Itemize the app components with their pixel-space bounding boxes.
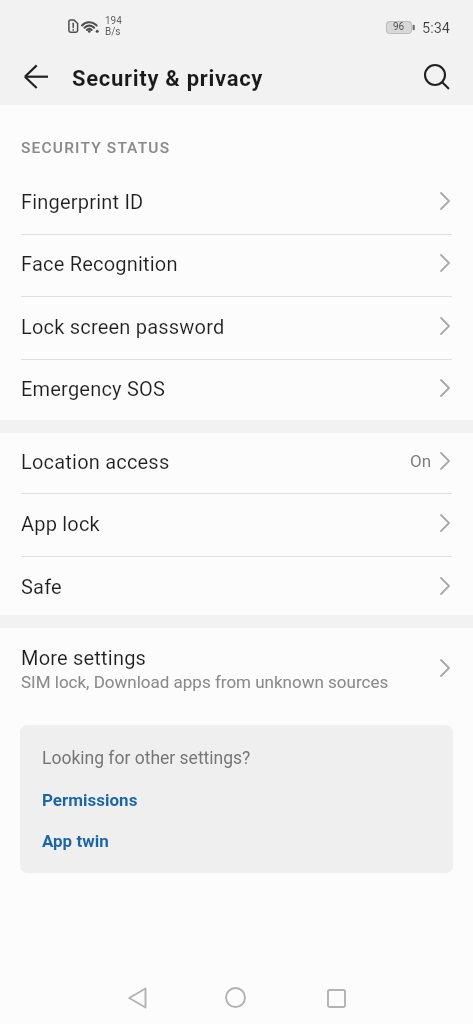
staticText: 5:34 — [422, 20, 450, 37]
staticText: On — [410, 451, 432, 471]
staticText: Location access — [21, 450, 170, 473]
staticText: Fingerprint ID — [21, 190, 144, 213]
staticText: B/s — [105, 26, 121, 38]
staticText: Lock screen password — [21, 315, 225, 338]
staticText: Face Recognition — [21, 252, 178, 275]
staticText: Permissions — [42, 790, 138, 810]
staticText: Emergency SOS — [21, 377, 165, 400]
staticText: 96 — [393, 21, 405, 33]
staticText: App lock — [21, 512, 100, 535]
staticText: App twin — [42, 831, 109, 851]
staticText: 194 — [105, 15, 122, 27]
staticText: Safe — [21, 575, 62, 598]
staticText: More settings — [21, 646, 147, 669]
staticText: Looking for other settings? — [42, 748, 251, 769]
staticText: SECURITY STATUS — [21, 139, 171, 157]
staticText: SIM lock, Download apps from unknown sou… — [21, 672, 389, 692]
staticText: Security & privacy — [72, 66, 264, 92]
